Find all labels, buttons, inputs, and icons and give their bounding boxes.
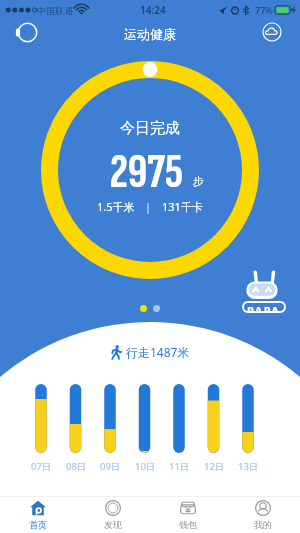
button[interactable]: 发现 [75,497,150,533]
staticText: 行走1487米 [126,344,190,360]
staticText: 14:24 [140,3,166,17]
button[interactable]: 我的 [225,497,300,533]
staticText: 11日 [169,460,190,473]
staticText: 今日完成 [120,119,180,138]
button[interactable]: 首页 [0,497,75,533]
button[interactable]: Cloud sync [257,17,287,47]
staticText: | [145,199,152,214]
button[interactable]: 钱包 [150,497,225,533]
staticText: 1.5千米 [97,199,135,214]
staticText: 131千卡 [162,199,203,214]
staticText: 中国联通 [37,5,73,16]
staticText: 步 [193,174,204,188]
staticText: 77% [255,4,273,16]
staticText: 我的 [254,519,272,530]
staticText: 08日 [66,460,87,473]
staticText: 首页 [29,519,47,530]
staticText: 12日 [204,460,225,473]
staticText: 运动健康 [124,26,176,42]
staticText: 发现 [104,519,122,530]
staticText: 10日 [135,460,156,473]
staticText: 钱包 [179,519,197,530]
staticText: 07日 [31,460,52,473]
button[interactable]: Watch device [12,17,42,47]
staticText: 2975 [110,143,183,202]
staticText: PAPA [247,303,281,311]
staticText: 13日 [238,460,259,473]
staticText: 09日 [100,460,121,473]
